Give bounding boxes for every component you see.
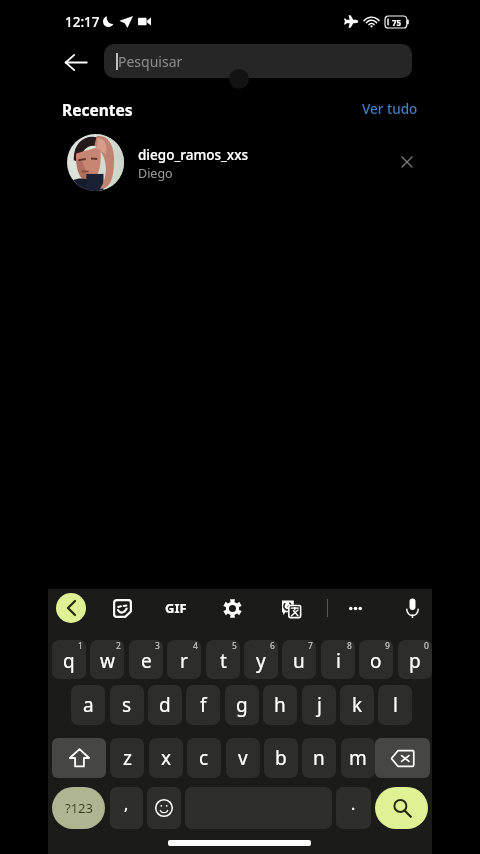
button[interactable]: y [244, 640, 278, 679]
button[interactable]: g [225, 685, 259, 725]
staticText: s [122, 692, 132, 718]
button[interactable]: k [340, 685, 374, 725]
button[interactable]: Back [59, 45, 93, 79]
staticText: ?123 [65, 799, 93, 817]
staticText: d [159, 692, 171, 718]
staticText: m [349, 745, 367, 771]
staticText: 9 [385, 640, 390, 652]
button[interactable]: Back [56, 593, 86, 623]
staticText: w [100, 648, 115, 674]
staticText: 2 [116, 640, 121, 652]
staticText: 6 [270, 640, 275, 652]
button[interactable]: GIF [156, 593, 196, 623]
staticText: Recentes [62, 99, 133, 120]
button[interactable]: l [378, 685, 412, 725]
staticText: n [313, 745, 325, 771]
button[interactable]: Pesquisar [104, 44, 412, 78]
button[interactable]: ?123 [52, 787, 105, 829]
staticText: a [83, 692, 94, 718]
button[interactable]: b [264, 738, 298, 778]
button[interactable]: w [90, 640, 124, 679]
staticText: Pesquisar [118, 52, 183, 71]
button[interactable]: m [341, 738, 375, 778]
staticText: i [336, 648, 341, 674]
button[interactable]: Ver tudo [362, 98, 418, 120]
button[interactable]: Shift [52, 738, 106, 778]
button[interactable]: n [302, 738, 336, 778]
button[interactable]: Voice input [397, 593, 427, 623]
staticText: 8 [347, 640, 352, 652]
button[interactable]: z [110, 738, 144, 778]
button[interactable]: u [282, 640, 316, 679]
button[interactable]: j [302, 685, 336, 725]
staticText: v [238, 745, 248, 771]
staticText: o [370, 648, 382, 674]
staticText: e [141, 648, 152, 674]
button[interactable]: , [110, 787, 143, 829]
button[interactable]: o [359, 640, 393, 679]
staticText: f [200, 692, 207, 718]
button[interactable]: v [226, 738, 260, 778]
button[interactable]: h [263, 685, 297, 725]
staticText: . [351, 793, 356, 815]
staticText: t [220, 648, 227, 674]
button[interactable]: diego_ramos_xxs [0, 132, 480, 192]
button[interactable]: i [321, 640, 355, 679]
button[interactable]: r [167, 640, 201, 679]
staticText: z [123, 745, 132, 771]
staticText: l [393, 692, 398, 718]
button[interactable]: e [129, 640, 163, 679]
button[interactable]: Emoji [147, 787, 181, 829]
button[interactable]: Settings [217, 593, 247, 623]
staticText: b [275, 745, 287, 771]
button[interactable]: s [110, 685, 144, 725]
button[interactable]: p [398, 640, 432, 679]
button[interactable]: Recentes [62, 98, 133, 120]
button[interactable]: Search [375, 787, 428, 829]
staticText: 3 [155, 640, 160, 652]
staticText: 4 [193, 640, 198, 652]
staticText: c [199, 745, 209, 771]
staticText: 12:17 [65, 13, 100, 31]
button[interactable]: More options [340, 593, 370, 623]
button[interactable]: t [206, 640, 240, 679]
staticText: x [161, 745, 172, 771]
button[interactable]: Translate [276, 593, 306, 623]
staticText: k [352, 692, 363, 718]
staticText: Ver tudo [362, 100, 418, 118]
button[interactable]: Backspace [375, 738, 430, 778]
button[interactable]: d [148, 685, 182, 725]
staticText: 0 [424, 640, 429, 652]
button[interactable]: . [336, 787, 371, 829]
button[interactable]: a [71, 685, 105, 725]
staticText: , [124, 793, 129, 815]
staticText: j [317, 692, 322, 718]
button[interactable]: x [149, 738, 183, 778]
button[interactable]: c [187, 738, 221, 778]
button[interactable]: q [52, 640, 86, 679]
staticText: 1 [78, 640, 83, 652]
staticText: r [180, 648, 188, 674]
staticText: 75 [392, 17, 402, 28]
staticText: u [293, 648, 305, 674]
staticText: Diego [138, 165, 173, 182]
staticText: p [409, 648, 421, 674]
staticText: g [236, 692, 248, 718]
button[interactable]: Stickers [107, 593, 137, 623]
staticText: GIF [165, 599, 187, 617]
button[interactable]: f [186, 685, 220, 725]
staticText: 5 [232, 640, 237, 652]
staticText: y [256, 648, 266, 674]
staticText: diego_ramos_xxs [138, 146, 249, 164]
button[interactable]: Remove [393, 148, 421, 176]
staticText: h [274, 692, 286, 718]
staticText: 7 [308, 640, 313, 652]
staticText: q [63, 648, 75, 674]
